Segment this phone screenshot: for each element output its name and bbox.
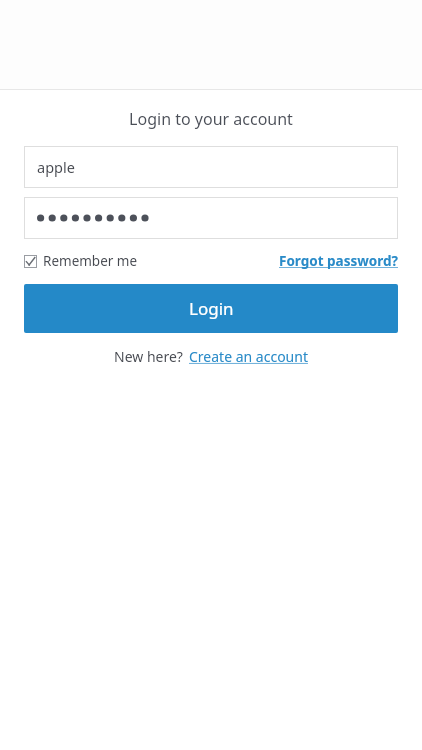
staticText: Login to your account	[0, 108, 422, 130]
button[interactable]: Login	[24, 284, 398, 333]
staticText: New here?	[114, 347, 183, 366]
staticText: Create an account	[189, 347, 308, 366]
button[interactable]: Remember me	[24, 252, 138, 270]
button[interactable]: Password	[24, 197, 398, 239]
staticText: Login	[189, 297, 234, 320]
staticText: apple	[37, 157, 75, 177]
button[interactable]: apple	[24, 146, 398, 188]
staticText: Forgot password?	[279, 252, 398, 270]
staticText: Remember me	[43, 252, 138, 270]
button[interactable]: Forgot password?	[279, 252, 398, 270]
button[interactable]: Create an account	[189, 347, 308, 366]
